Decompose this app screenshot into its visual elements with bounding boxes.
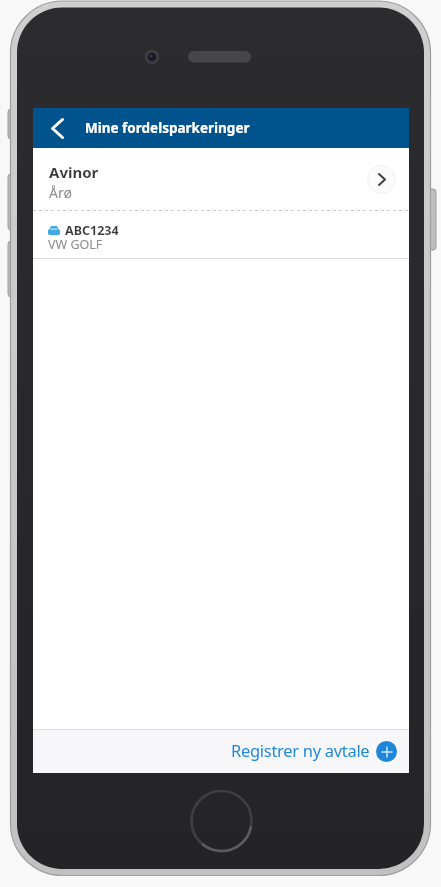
staticText: Mine fordelsparkeringer: [85, 119, 250, 137]
staticText: Avinor: [49, 162, 99, 182]
staticText: Registrer ny avtale: [231, 739, 370, 761]
staticText: Årø: [49, 183, 72, 202]
staticText: ABC1234: [65, 222, 119, 239]
button[interactable]: Avinor: [33, 148, 409, 210]
button[interactable]: ABC1234: [33, 211, 409, 258]
button[interactable]: Registrer ny avtale: [33, 730, 409, 773]
staticText: VW GOLF: [48, 236, 103, 253]
button[interactable]: [33, 108, 77, 148]
